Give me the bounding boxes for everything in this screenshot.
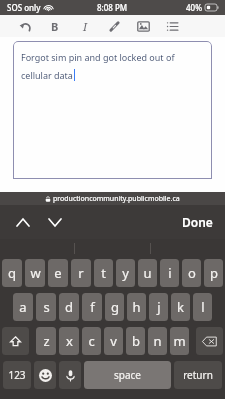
staticText: B <box>51 19 59 34</box>
staticText: o <box>188 264 196 282</box>
staticText: y <box>122 264 129 282</box>
staticText: space <box>114 368 141 382</box>
button[interactable]: Dictation <box>59 361 81 389</box>
button[interactable]: h <box>127 293 146 321</box>
button[interactable]: Delete <box>196 327 223 355</box>
staticText: 123 <box>8 368 26 382</box>
button[interactable]: y <box>116 259 135 287</box>
button[interactable]: Link <box>103 15 125 37</box>
staticText: i <box>168 264 172 282</box>
staticText: Done <box>182 214 213 230</box>
staticText: cellular data <box>21 69 73 81</box>
staticText: s <box>43 298 50 316</box>
button[interactable]: w <box>25 259 45 287</box>
button[interactable]: m <box>170 327 189 355</box>
staticText: z <box>43 332 50 350</box>
button[interactable]: g <box>105 293 124 321</box>
button[interactable]: e <box>48 259 68 287</box>
staticText: Forgot sim pin and got locked out of <box>21 51 175 63</box>
staticText: b <box>132 332 140 350</box>
button[interactable]: Emoji <box>34 361 56 389</box>
staticText: f <box>90 298 95 316</box>
button[interactable]: z <box>36 327 56 355</box>
staticText: r <box>78 264 84 282</box>
staticText: u <box>143 264 152 282</box>
button[interactable]: Insert image <box>132 15 154 37</box>
button[interactable]: i <box>160 259 179 287</box>
staticText: n <box>153 332 162 350</box>
staticText: 40% <box>186 2 202 13</box>
staticText: d <box>65 298 73 316</box>
staticText: c <box>88 332 95 350</box>
button[interactable]: v <box>104 327 123 355</box>
staticText: h <box>132 298 141 316</box>
button[interactable]: b <box>126 327 145 355</box>
button[interactable]: l <box>193 293 212 321</box>
button[interactable]: c <box>82 327 101 355</box>
button[interactable]: p <box>204 259 223 287</box>
staticText: l <box>201 298 205 316</box>
button[interactable]: u <box>138 259 157 287</box>
button[interactable]: return <box>174 361 222 389</box>
staticText: v <box>110 332 117 350</box>
button[interactable]: Forgot sim pin and got locked out of <box>13 41 212 179</box>
staticText: I <box>83 19 88 34</box>
staticText: t <box>101 264 106 282</box>
button[interactable]: space <box>84 361 171 389</box>
staticText: q <box>8 264 16 282</box>
staticText: g <box>111 298 119 316</box>
button[interactable]: Bold <box>44 15 66 37</box>
staticText: e <box>54 264 62 282</box>
button[interactable]: j <box>149 293 168 321</box>
staticText: 8:08 PM <box>97 2 128 13</box>
staticText: return <box>183 368 213 382</box>
staticText: SOS only <box>7 2 41 13</box>
staticText: j <box>157 298 161 316</box>
staticText: p <box>210 264 218 282</box>
button[interactable]: o <box>182 259 201 287</box>
button[interactable]: f <box>82 293 102 321</box>
button[interactable]: Undo <box>14 15 36 37</box>
staticText: productioncommunity.publicmobile.ca <box>53 194 180 204</box>
button[interactable]: Done <box>176 210 219 234</box>
button[interactable]: Next field <box>42 209 68 235</box>
button[interactable]: d <box>59 293 79 321</box>
button[interactable]: 123 <box>3 361 31 389</box>
button[interactable]: q <box>2 259 22 287</box>
staticText: w <box>30 264 41 282</box>
button[interactable]: r <box>71 259 91 287</box>
button[interactable]: x <box>59 327 79 355</box>
button[interactable]: n <box>148 327 167 355</box>
staticText: k <box>177 298 184 316</box>
button[interactable]: Previous field <box>10 209 36 235</box>
button[interactable]: Italic <box>74 15 96 37</box>
staticText: m <box>173 332 186 350</box>
staticText: a <box>19 298 27 316</box>
button[interactable]: Shift <box>2 327 29 355</box>
button[interactable]: k <box>171 293 190 321</box>
button[interactable]: List <box>161 15 183 37</box>
button[interactable]: a <box>13 293 33 321</box>
staticText: x <box>66 332 73 350</box>
button[interactable]: s <box>36 293 56 321</box>
button[interactable]: t <box>94 259 113 287</box>
